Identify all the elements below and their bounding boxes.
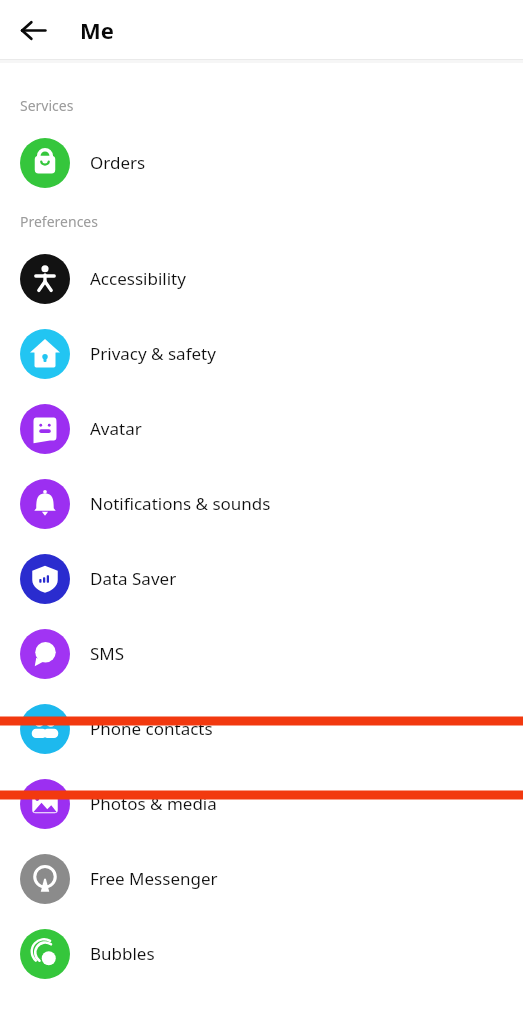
staticText: SMS bbox=[90, 642, 125, 665]
button[interactable]: Data Saver bbox=[0, 541, 523, 616]
staticText: Data Saver bbox=[90, 567, 177, 590]
staticText: Privacy & safety bbox=[90, 342, 216, 365]
staticText: Photos & media bbox=[90, 792, 217, 815]
staticText: Notifications & sounds bbox=[90, 492, 271, 515]
button[interactable]: Orders bbox=[0, 125, 523, 200]
button[interactable]: SMS bbox=[0, 616, 523, 691]
button[interactable]: Notifications & sounds bbox=[0, 466, 523, 541]
staticText: Preferences bbox=[20, 212, 98, 231]
button[interactable]: Photos & media bbox=[0, 766, 523, 841]
button[interactable]: Back bbox=[9, 6, 57, 54]
button[interactable]: Free Messenger bbox=[0, 841, 523, 916]
staticText: Me bbox=[80, 15, 114, 45]
staticText: Phone contacts bbox=[90, 717, 213, 740]
staticText: Services bbox=[20, 96, 74, 115]
button[interactable]: Accessibility bbox=[0, 241, 523, 316]
staticText: Orders bbox=[90, 151, 146, 174]
staticText: Free Messenger bbox=[90, 867, 218, 890]
button[interactable]: Avatar bbox=[0, 391, 523, 466]
staticText: Avatar bbox=[90, 417, 142, 440]
button[interactable]: Phone contacts bbox=[0, 691, 523, 766]
button[interactable]: Privacy & safety bbox=[0, 316, 523, 391]
staticText: Accessibility bbox=[90, 267, 186, 290]
button[interactable]: Bubbles bbox=[0, 916, 523, 991]
staticText: Bubbles bbox=[90, 942, 155, 965]
